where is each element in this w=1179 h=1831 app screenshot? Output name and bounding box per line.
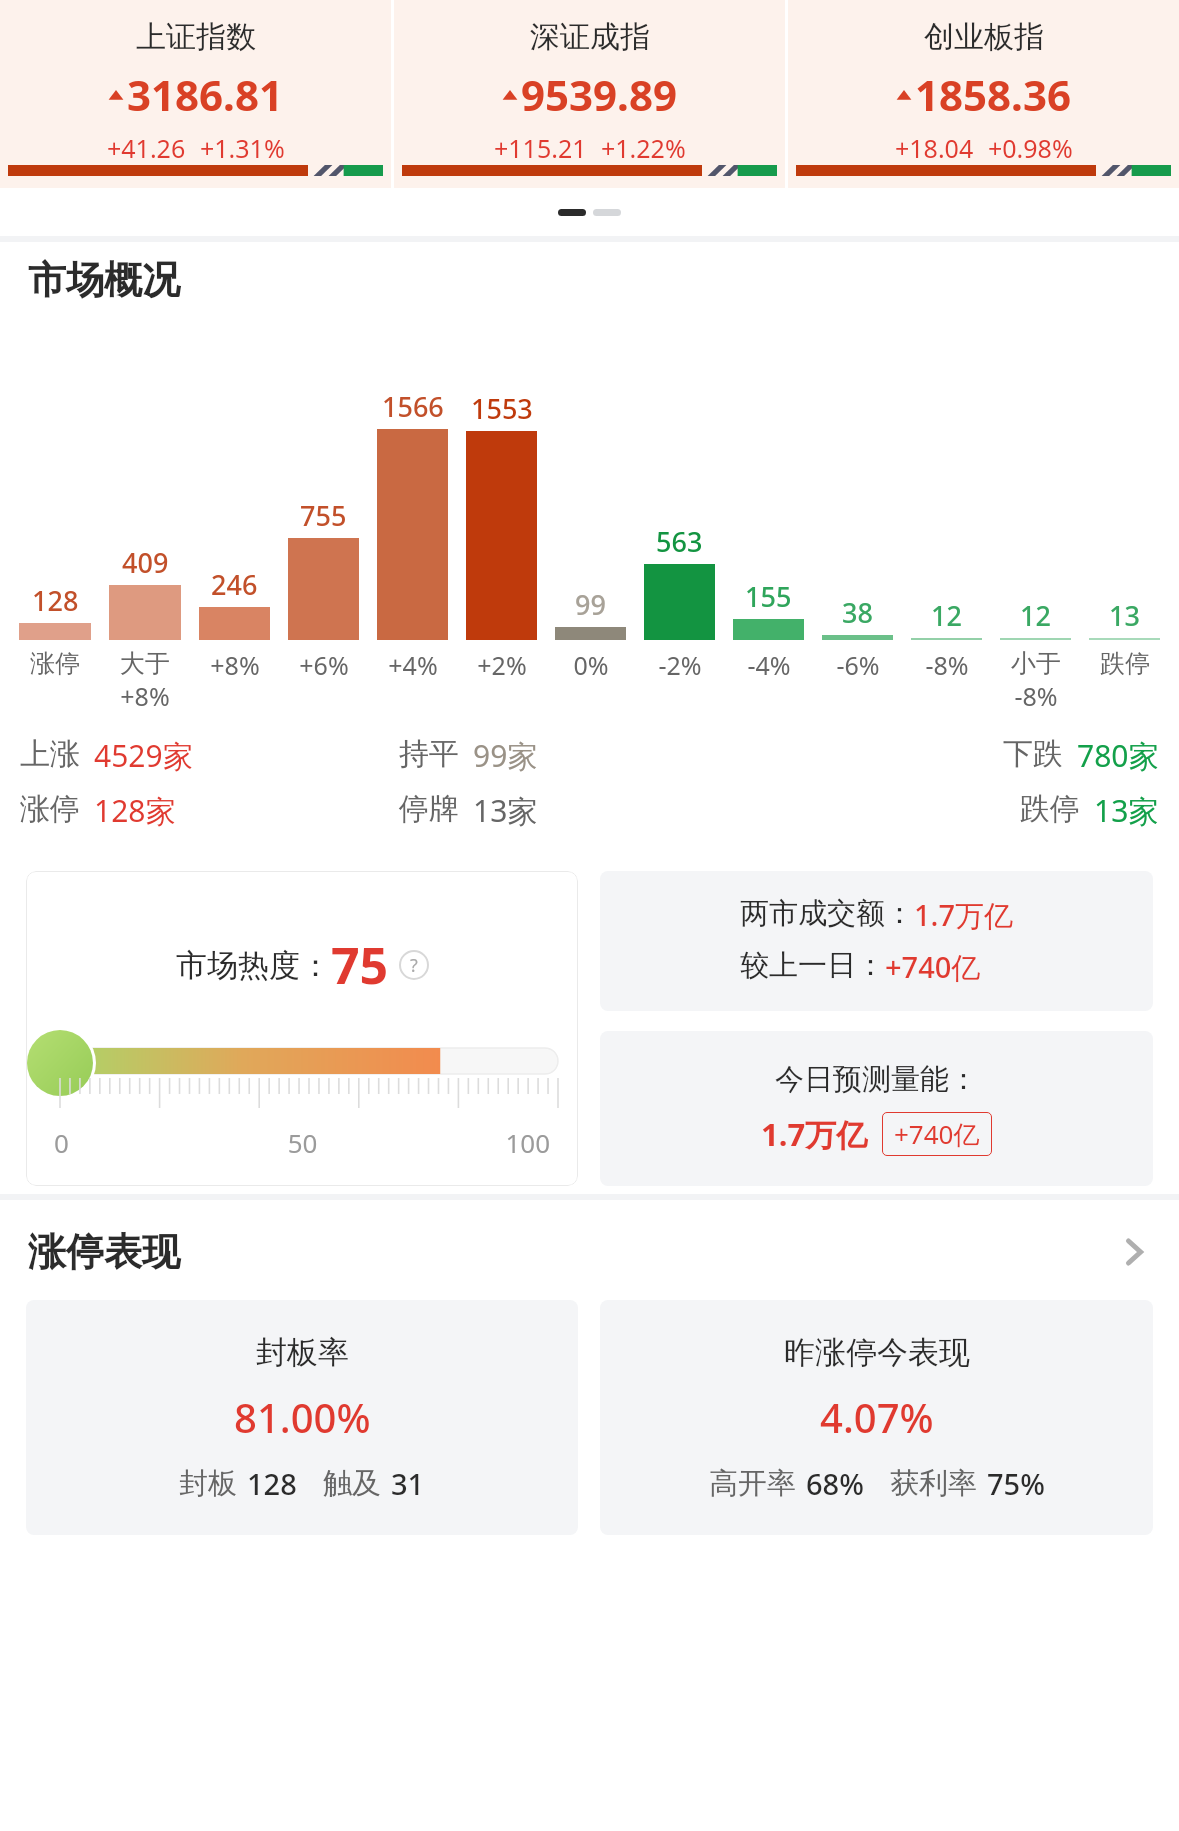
staticText: 封板	[179, 1465, 237, 1502]
button[interactable]: 创业板指	[788, 0, 1179, 188]
staticText: 128	[247, 1464, 297, 1503]
staticText: 高开率	[709, 1465, 796, 1502]
staticText: 停牌	[399, 790, 459, 828]
staticText: 0	[54, 1125, 220, 1160]
staticText: 13	[1109, 597, 1140, 634]
staticText: 13家	[1094, 790, 1159, 831]
staticText: +740亿	[885, 947, 981, 987]
button[interactable]: 说明	[399, 950, 429, 980]
staticText: 100	[385, 1125, 550, 1160]
staticText: 创业板指	[924, 18, 1044, 56]
button[interactable]: 涨停表现	[0, 1228, 1179, 1276]
button[interactable]: 深证成指	[394, 0, 785, 188]
staticText: 13家	[473, 790, 538, 831]
button[interactable]: 两市成交额：	[600, 871, 1153, 1011]
staticText: 小于	[1011, 648, 1061, 679]
staticText: 3186.81	[127, 66, 283, 123]
staticText: 1858.36	[915, 66, 1071, 123]
button[interactable]: 昨涨停今表现	[600, 1300, 1153, 1535]
staticText: 50	[220, 1125, 385, 1160]
staticText: 246	[211, 566, 258, 603]
staticText: 跌停	[1020, 790, 1080, 828]
staticText: 155	[745, 578, 792, 615]
staticText: 获利率	[890, 1465, 977, 1502]
staticText: 563	[656, 523, 703, 560]
staticText: 99	[575, 586, 606, 623]
staticText: -4%	[747, 648, 791, 682]
staticText: 0%	[573, 648, 609, 682]
staticText: 755	[300, 497, 347, 534]
staticText: 深证成指	[530, 18, 650, 56]
staticText: +41.26	[107, 131, 186, 165]
staticText: 封板率	[256, 1333, 349, 1372]
staticText: +1.22%	[601, 131, 686, 165]
staticText: 1.7万亿	[914, 895, 1014, 935]
staticText: 市场概况	[28, 256, 180, 304]
staticText: 128家	[94, 790, 176, 831]
other: 查看更多	[1117, 1235, 1151, 1269]
staticText: 4529家	[94, 735, 193, 776]
staticText: 68%	[806, 1464, 864, 1503]
staticText: 涨停表现	[28, 1228, 180, 1276]
staticText: +6%	[299, 648, 349, 682]
staticText: +4%	[388, 648, 438, 682]
button[interactable]: 今日预测量能：	[600, 1031, 1153, 1186]
staticText: 12	[1020, 597, 1051, 634]
staticText: 昨涨停今表现	[784, 1333, 970, 1372]
staticText: 1566	[382, 388, 444, 425]
staticText: 99家	[473, 735, 538, 776]
staticText: 81.00%	[234, 1390, 371, 1444]
staticText: 75%	[987, 1464, 1045, 1503]
staticText: 409	[122, 544, 169, 581]
staticText: 31	[391, 1464, 425, 1503]
staticText: 4.07%	[820, 1390, 934, 1444]
staticText: -8%	[1014, 679, 1058, 713]
staticText: +115.21	[494, 131, 587, 165]
staticText: +8%	[210, 648, 260, 682]
staticText: +740亿	[894, 1116, 980, 1152]
staticText: 128	[32, 582, 79, 619]
staticText: -6%	[836, 648, 880, 682]
staticText: -2%	[658, 648, 702, 682]
staticText: +18.04	[895, 131, 974, 165]
staticText: ?	[410, 953, 418, 978]
staticText: 38	[842, 594, 873, 631]
staticText: +0.98%	[988, 131, 1073, 165]
staticText: 涨停	[20, 790, 80, 828]
staticText: 大于	[120, 648, 170, 679]
staticText: 较上一日：	[740, 947, 885, 984]
staticText: 上涨	[20, 735, 80, 773]
staticText: 触及	[323, 1465, 381, 1502]
staticText: 涨停	[30, 648, 80, 679]
staticText: 12	[931, 597, 962, 634]
staticText: +2%	[477, 648, 527, 682]
staticText: +8%	[120, 679, 170, 713]
staticText: +1.31%	[200, 131, 285, 165]
staticText: 1.7万亿	[761, 1113, 868, 1155]
staticText: 今日预测量能：	[775, 1061, 978, 1098]
staticText: 持平	[399, 735, 459, 773]
staticText: 跌停	[1100, 648, 1150, 679]
staticText: 两市成交额：	[740, 895, 914, 932]
staticText: 上证指数	[136, 18, 256, 56]
staticText: 下跌	[1003, 735, 1063, 773]
button[interactable]: 封板率	[26, 1300, 578, 1535]
staticText: 75	[331, 931, 389, 999]
button[interactable]: 市场热度：	[26, 871, 578, 1186]
staticText: 市场热度：	[176, 946, 331, 985]
staticText: 1553	[471, 390, 533, 427]
staticText: -8%	[925, 648, 969, 682]
staticText: 780家	[1077, 735, 1159, 776]
button[interactable]: 上证指数	[0, 0, 391, 188]
staticText: 9539.89	[521, 66, 677, 123]
